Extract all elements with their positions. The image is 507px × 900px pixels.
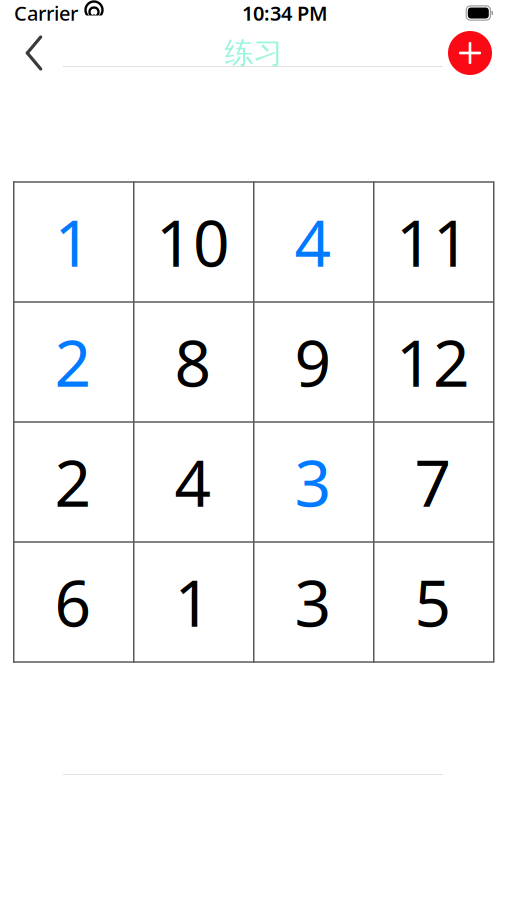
button[interactable]: 3 xyxy=(253,422,373,542)
staticText: 1 xyxy=(54,199,91,284)
staticText: 9 xyxy=(294,319,331,404)
staticText: 4 xyxy=(294,199,331,284)
button[interactable]: 2 xyxy=(13,422,133,542)
button[interactable]: 7 xyxy=(373,422,493,542)
button[interactable]: 5 xyxy=(373,542,493,662)
button[interactable]: Back xyxy=(8,31,60,75)
button[interactable]: 12 xyxy=(373,302,493,422)
button[interactable]: 3 xyxy=(253,542,373,662)
button[interactable]: 10 xyxy=(133,182,253,302)
button[interactable]: 2 xyxy=(13,302,133,422)
staticText: 2 xyxy=(54,319,91,404)
staticText: 2 xyxy=(54,439,91,524)
staticText: 7 xyxy=(414,439,451,524)
staticText: 10:34 PM xyxy=(242,0,328,26)
button[interactable]: 11 xyxy=(373,182,493,302)
button[interactable]: 6 xyxy=(13,542,133,662)
staticText: 3 xyxy=(294,439,331,524)
staticText: 11 xyxy=(396,199,470,284)
button[interactable]: 4 xyxy=(133,422,253,542)
staticText: 4 xyxy=(174,439,211,524)
staticText: 5 xyxy=(414,559,451,644)
button[interactable]: 9 xyxy=(253,302,373,422)
button[interactable]: 8 xyxy=(133,302,253,422)
staticText: 8 xyxy=(174,319,211,404)
staticText: 10 xyxy=(156,199,230,284)
button[interactable]: Add xyxy=(441,29,499,77)
staticText: 1 xyxy=(174,559,211,644)
staticText: 3 xyxy=(294,559,331,644)
button[interactable]: 1 xyxy=(133,542,253,662)
staticText: Carrier xyxy=(14,0,78,26)
button[interactable]: 1 xyxy=(13,182,133,302)
staticText: 6 xyxy=(54,559,91,644)
staticText: 练习 xyxy=(224,35,282,71)
staticText: 12 xyxy=(396,319,470,404)
button[interactable]: 4 xyxy=(253,182,373,302)
